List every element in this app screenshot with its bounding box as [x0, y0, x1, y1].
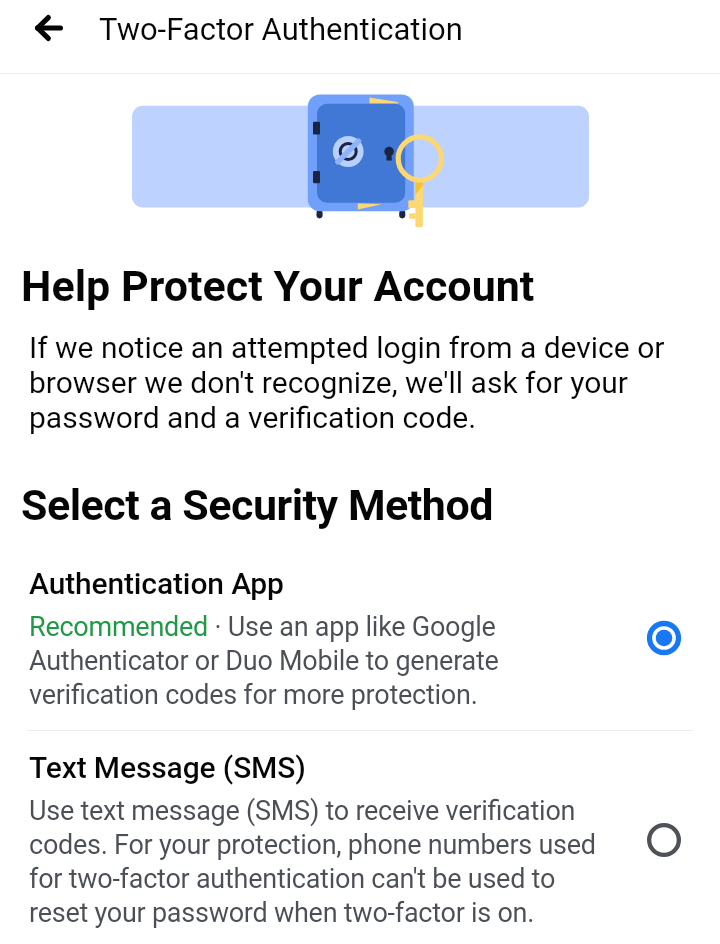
staticText: Use text message (SMS) to receive verifi…	[29, 795, 614, 929]
staticText: Help Protect Your Account	[21, 261, 535, 311]
staticText: Select a Security Method	[21, 480, 494, 530]
button[interactable]: Back	[14, 0, 84, 56]
button[interactable]: Text Message (SMS)	[0, 736, 720, 944]
staticText: Authentication App	[29, 566, 284, 601]
staticText: If we notice an attempted login from a d…	[29, 330, 684, 435]
staticText: Text Message (SMS)	[29, 750, 306, 785]
staticText: Two-Factor Authentication	[99, 11, 463, 47]
staticText: Recommended · Use an app like Google Aut…	[29, 611, 614, 711]
button[interactable]: Authentication App	[0, 551, 720, 730]
